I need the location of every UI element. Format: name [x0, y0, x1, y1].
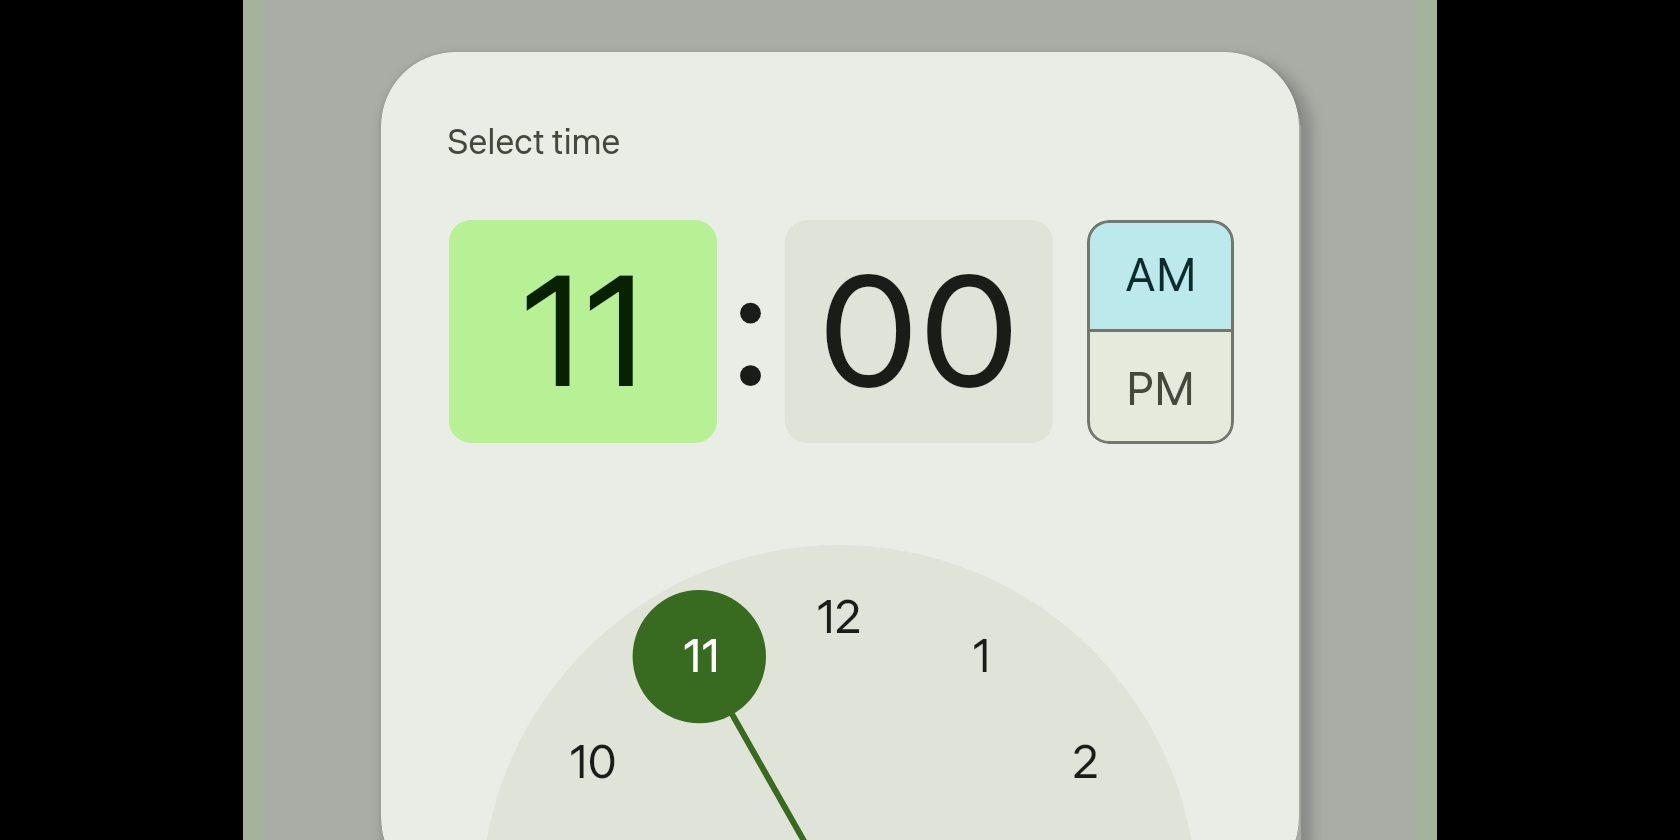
button[interactable]: AM [1087, 220, 1234, 329]
button[interactable]: 00 [785, 220, 1053, 443]
staticText: 10 [569, 731, 617, 797]
staticText: 11 [683, 625, 720, 691]
button[interactable]: 11 [631, 613, 771, 703]
button[interactable]: 1 [911, 613, 1051, 703]
staticText: 00 [818, 223, 1020, 443]
button[interactable]: PM [1087, 332, 1234, 444]
button[interactable]: 12 [769, 574, 909, 664]
button[interactable]: 11 [449, 220, 717, 443]
button[interactable]: Clock dial [481, 545, 1197, 840]
staticText: 12 [816, 586, 862, 652]
staticText: PM [1126, 358, 1196, 424]
staticText: 2 [1072, 731, 1099, 797]
staticText: AM [1125, 244, 1197, 310]
staticText: 1 [972, 625, 991, 691]
button[interactable]: 10 [523, 719, 663, 809]
button[interactable]: 2 [1015, 719, 1155, 809]
staticText: 11 [520, 223, 647, 443]
staticText: Select time [447, 118, 621, 168]
